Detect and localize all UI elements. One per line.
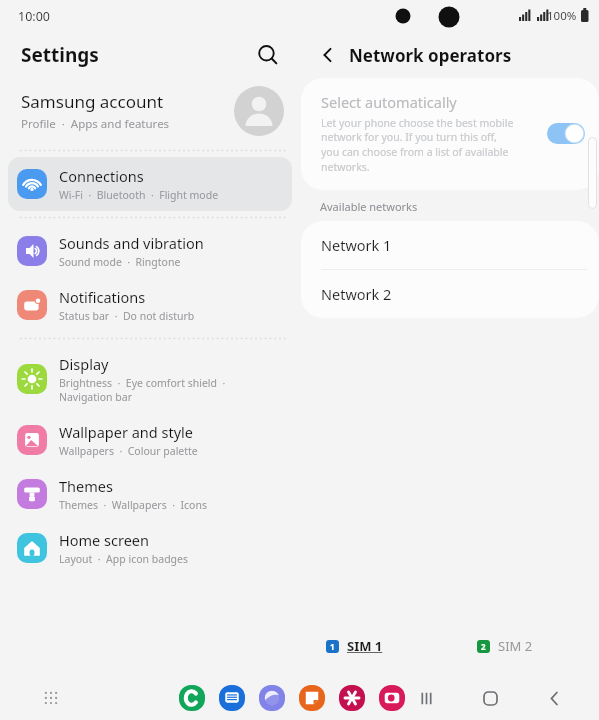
button[interactable]: msg (219, 685, 245, 711)
button[interactable]: notes (299, 685, 325, 711)
staticText: Notifications (59, 287, 146, 307)
button[interactable]: Samsung account (0, 78, 300, 144)
button[interactable]: Themes (0, 467, 300, 521)
staticText: SIM 2 (498, 637, 533, 655)
staticText: Network 2 (321, 284, 392, 304)
staticText: 1 (330, 641, 335, 652)
button[interactable]: Network 2 (301, 270, 599, 318)
staticText: Profile · Apps and features (21, 116, 170, 132)
staticText: Settings (21, 42, 99, 68)
staticText: Wallpaper and style (59, 422, 193, 442)
staticText: Brightness · Eye comfort shield · Naviga… (59, 376, 226, 404)
staticText: Sounds and vibration (59, 233, 204, 253)
staticText: Samsung account (21, 90, 164, 113)
staticText: Themes · Wallpapers · Icons (59, 498, 207, 512)
staticText: 10:00 (18, 8, 50, 25)
staticText: Wallpapers · Colour palette (59, 444, 198, 458)
staticText: Connections (59, 166, 144, 186)
button[interactable]: phone (179, 685, 205, 711)
button[interactable]: Apps (36, 683, 66, 713)
button[interactable]: 1 (322, 633, 387, 659)
button[interactable]: camera (379, 685, 405, 711)
staticText: 2 (481, 641, 486, 652)
button[interactable]: Select automatically toggle (547, 123, 585, 144)
button[interactable]: Connections (8, 157, 292, 211)
staticText: Available networks (320, 199, 418, 214)
staticText: Select automatically (321, 92, 457, 112)
button[interactable]: Sounds and vibration (0, 224, 300, 278)
button[interactable]: Wallpaper and style (0, 413, 300, 467)
staticText: Wi-Fi · Bluetooth · Flight mode (59, 188, 219, 202)
button[interactable]: net (259, 685, 285, 711)
staticText: Let your phone choose the best mobile ne… (321, 116, 514, 174)
button[interactable]: Back (537, 681, 571, 715)
button[interactable]: Recents (409, 681, 443, 715)
button[interactable]: Search (250, 37, 286, 73)
staticText: Status bar · Do not disturb (59, 309, 195, 323)
staticText: SIM 1 (347, 637, 383, 655)
staticText: Sound mode · Ringtone (59, 255, 181, 269)
staticText: Network 1 (321, 235, 392, 255)
staticText: 100% (547, 8, 577, 24)
staticText: Layout · App icon badges (59, 552, 189, 566)
button[interactable]: Select automatically (301, 78, 599, 190)
staticText: Themes (59, 476, 113, 496)
button[interactable]: Home (473, 681, 507, 715)
button[interactable]: Display (0, 345, 300, 413)
button[interactable]: flower (339, 685, 365, 711)
button[interactable]: 2 (473, 633, 537, 659)
button[interactable]: Back (312, 39, 344, 71)
button[interactable]: Notifications (0, 278, 300, 332)
staticText: Network operators (349, 44, 512, 67)
staticText: Home screen (59, 530, 149, 550)
staticText: Display (59, 354, 109, 374)
button[interactable]: Network 1 (301, 221, 599, 269)
button[interactable]: Home screen (0, 521, 300, 575)
